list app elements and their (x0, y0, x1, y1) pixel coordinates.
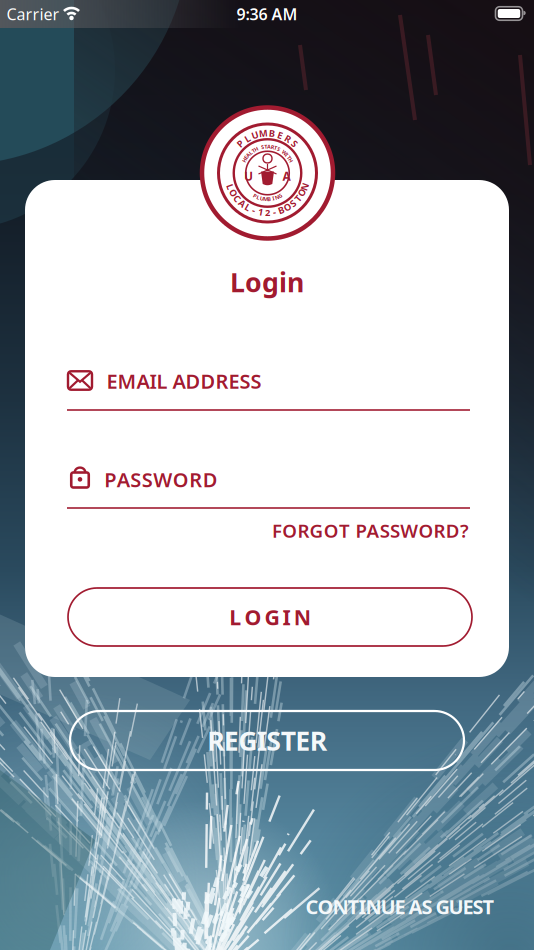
staticText: E (106, 368, 117, 394)
button[interactable]: F (272, 518, 469, 543)
staticText: 2 (265, 206, 270, 219)
staticText: S (239, 368, 250, 394)
staticText: A (265, 143, 269, 150)
staticText: E (462, 893, 473, 920)
button[interactable]: L (68, 588, 472, 646)
staticText: R (434, 518, 446, 543)
staticText: W (153, 466, 172, 493)
staticText: P (104, 466, 116, 493)
staticText: C (264, 206, 270, 219)
staticText: L (266, 195, 269, 203)
staticText: N (365, 893, 381, 920)
staticText: T (347, 893, 359, 920)
staticText: A (282, 168, 290, 184)
staticText: I (266, 195, 268, 203)
staticText: D (446, 518, 460, 543)
staticText (431, 893, 436, 920)
button[interactable]: C (305, 893, 494, 920)
button[interactable]: E (0, 359, 534, 421)
staticText (267, 143, 268, 150)
staticText: 1 (265, 206, 270, 219)
staticText: G (238, 723, 257, 758)
staticText: R (264, 127, 270, 139)
staticText: B (264, 127, 270, 139)
staticText: N (294, 603, 311, 631)
staticText: H (265, 143, 269, 150)
staticText: S (472, 893, 483, 920)
staticText: S (142, 466, 153, 493)
staticText: L (266, 143, 269, 150)
staticText: M (263, 127, 272, 139)
staticText: I (358, 893, 366, 920)
staticText: S (130, 466, 141, 493)
staticText: W (265, 143, 270, 150)
staticText (267, 143, 268, 150)
staticText: S (421, 893, 432, 920)
staticText: O (173, 466, 189, 493)
staticText: S (266, 143, 269, 150)
staticText: G (310, 518, 324, 543)
staticText: N (263, 206, 271, 219)
button[interactable]: P (0, 457, 534, 519)
staticText: R (266, 143, 269, 150)
staticText: U (264, 127, 271, 139)
staticText: I (266, 143, 268, 150)
staticText: A (367, 518, 380, 543)
button[interactable]: R (70, 711, 464, 770)
staticText: P (355, 518, 366, 543)
staticText: O (418, 518, 433, 543)
staticText: S (266, 143, 269, 150)
staticText: U (380, 893, 395, 920)
staticText: E (295, 723, 310, 758)
staticText: F (272, 518, 282, 543)
staticText: O (244, 603, 261, 631)
staticText: S (250, 368, 261, 394)
staticText: E (394, 893, 405, 920)
staticText: L (265, 127, 270, 139)
staticText: 9:36 AM (236, 3, 297, 25)
staticText: S (265, 206, 270, 219)
staticText: B (264, 206, 270, 219)
staticText: A (172, 368, 185, 394)
staticText: E (224, 723, 239, 758)
staticText: E (266, 143, 269, 150)
staticText: O (282, 518, 297, 543)
staticText: A (265, 143, 269, 150)
staticText: - (266, 206, 269, 219)
staticText: R (297, 518, 309, 543)
staticText: G (435, 893, 449, 920)
staticText: M (265, 195, 270, 203)
staticText: D (185, 368, 200, 394)
staticText: ? (460, 518, 469, 543)
staticText: B (265, 195, 269, 203)
staticText: U (244, 168, 253, 184)
staticText: T (281, 723, 296, 758)
staticText: R (215, 368, 228, 394)
staticText: O (264, 206, 271, 219)
staticText: L (265, 206, 270, 219)
staticText: U (265, 195, 269, 203)
staticText: T (266, 143, 269, 150)
staticText: L (156, 368, 167, 394)
staticText: L (229, 603, 241, 631)
staticText: A (136, 368, 149, 394)
staticText: R (207, 723, 224, 758)
staticText: P (264, 127, 270, 139)
staticText: R (189, 466, 202, 493)
staticText: D (203, 466, 218, 493)
staticText: T (339, 518, 350, 543)
staticText: T (266, 143, 269, 150)
staticText: M (117, 368, 136, 394)
staticText: T (266, 143, 269, 150)
staticText: W (400, 518, 418, 543)
staticText (404, 893, 409, 920)
staticText: D (200, 368, 215, 394)
staticText: O (264, 206, 271, 219)
staticText: N (265, 195, 269, 203)
staticText: H (265, 143, 269, 150)
staticText: U (448, 893, 463, 920)
staticText: A (264, 206, 270, 219)
staticText: O (264, 206, 271, 219)
